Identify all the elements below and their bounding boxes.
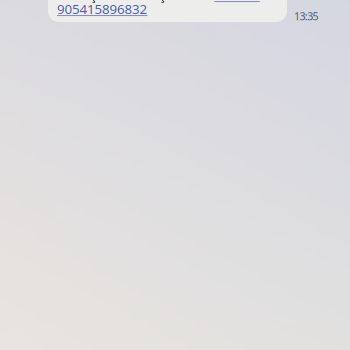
staticText: 13:35 [294, 9, 319, 23]
button[interactable]: Bana şuradan ulaşabilirsin wa.me/ [48, 0, 287, 22]
staticText: Bana şuradan ulaşabilirsin wa.me/ [57, 0, 260, 4]
staticText: 905415896832 [57, 0, 147, 18]
